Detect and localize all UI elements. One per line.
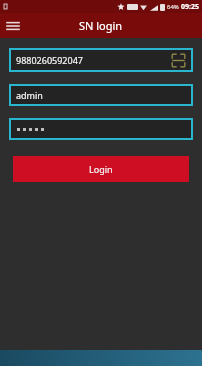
button[interactable]: 9880260592047 bbox=[11, 50, 191, 70]
button[interactable] bbox=[11, 120, 191, 138]
button[interactable]: Open navigation menu bbox=[4, 17, 22, 35]
staticText: 64% bbox=[167, 3, 179, 11]
staticText: SN login bbox=[79, 18, 123, 33]
button[interactable]: Scan barcode bbox=[169, 51, 187, 69]
staticText: Login bbox=[89, 163, 113, 175]
button[interactable]: Login bbox=[13, 156, 189, 182]
button[interactable]: admin bbox=[11, 86, 191, 104]
staticText: 9880260592047 bbox=[16, 54, 169, 66]
staticText: admin bbox=[16, 89, 43, 101]
staticText: 09:25 bbox=[181, 2, 199, 12]
